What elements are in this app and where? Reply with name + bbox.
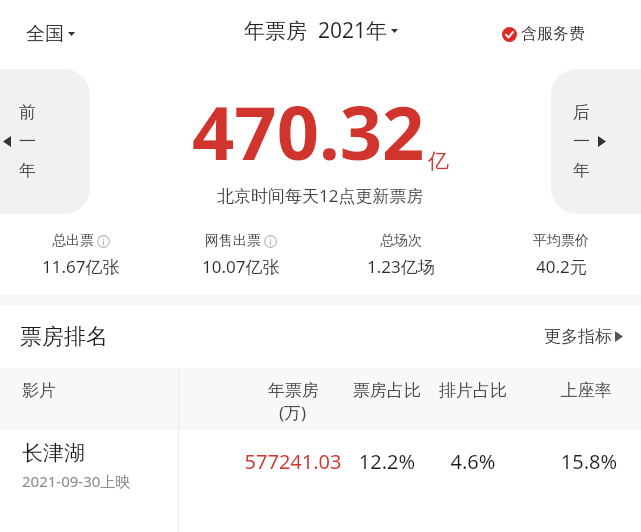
staticText: 12.2% [340,448,434,475]
button[interactable]: 总场次 [321,232,481,278]
staticText: 总场次 [380,232,422,250]
button[interactable]: 平均票价 [481,232,641,278]
staticText: (万) [279,401,307,424]
staticText: 北京时间每天12点更新票房 [217,184,424,207]
staticText: 长津湖 [22,440,85,466]
staticText: 含服务费 [521,24,585,44]
button[interactable]: 年票房 [244,16,398,45]
staticText: 票房占比 [340,380,434,401]
staticText: 上座率 [549,380,623,401]
staticText: 后 [573,102,590,123]
button[interactable]: 后一年 [551,69,641,214]
staticText: 票房排名 [20,323,108,351]
staticText: 影片 [22,380,56,401]
staticText: 4.6% [426,448,520,475]
staticText: 更多指标 [544,326,612,347]
staticText: 年 [19,160,36,181]
staticText: 年票房 [244,18,307,44]
staticText: 年票房 [268,380,319,401]
staticText: 总出票 [52,232,94,250]
staticText: 排片占比 [426,380,520,401]
staticText: 一 [19,131,36,152]
staticText: 全国 [26,22,64,46]
button[interactable]: 全国 [24,16,77,52]
staticText: 577241.03 [226,448,360,475]
staticText: 15.8% [549,448,629,475]
button[interactable]: 总出票 [0,232,161,278]
staticText: 2021-09-30上映 [22,471,131,491]
staticText: 前 [19,102,36,123]
staticText: 亿 [428,148,449,174]
button[interactable]: 含服务费 [502,18,585,50]
button[interactable]: 更多指标 [540,320,627,353]
staticText: 网售出票 [205,232,261,250]
button[interactable]: 网售出票 [161,232,321,278]
staticText: 470.32 [192,81,425,182]
button[interactable]: 长津湖 [0,430,641,510]
staticText: 11.67亿张 [42,255,120,278]
staticText: 40.2元 [536,255,587,278]
button[interactable]: 前一年 [0,69,90,214]
staticText: 平均票价 [533,232,589,250]
staticText: 2021年 [318,16,388,45]
staticText: 年 [573,160,590,181]
staticText: 10.07亿张 [202,255,280,278]
staticText: 1.23亿场 [367,255,435,278]
staticText: 一 [573,131,590,152]
